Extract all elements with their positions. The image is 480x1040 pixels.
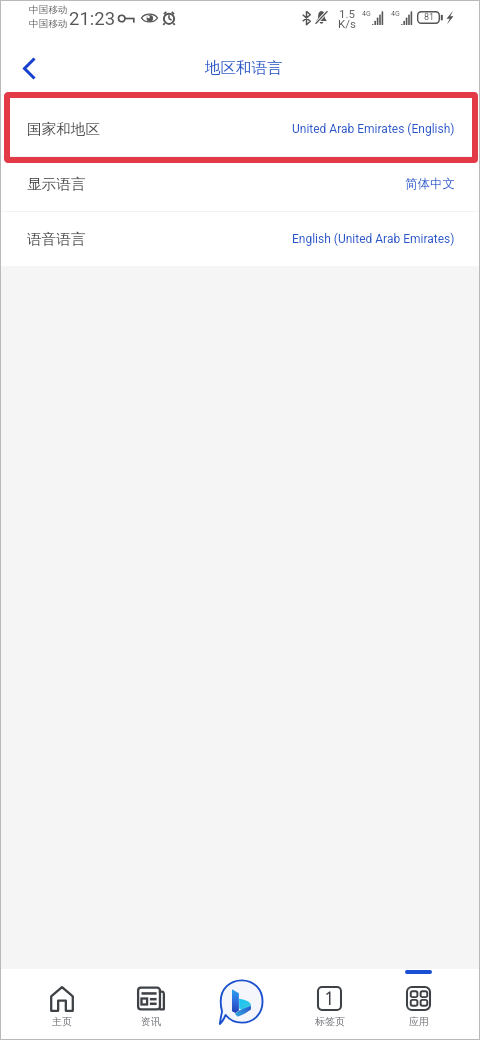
staticText: 1.5 K/s xyxy=(338,7,356,31)
button[interactable]: 语音语言 xyxy=(0,211,480,266)
button[interactable]: 国家和地区 xyxy=(0,101,480,156)
staticText: 语音语言 xyxy=(27,230,86,248)
button[interactable]: 标签页 xyxy=(285,969,374,1040)
staticText: 简体中文 xyxy=(405,176,455,192)
button[interactable]: 主页 xyxy=(17,969,106,1040)
staticText: 4G xyxy=(362,10,371,18)
button[interactable]: Assistant xyxy=(196,969,285,1040)
staticText: English (United Arab Emirates) xyxy=(292,232,455,246)
staticText: 地区和语言 xyxy=(205,58,283,78)
staticText: 国家和地区 xyxy=(27,120,100,138)
button[interactable]: 显示语言 xyxy=(0,156,480,211)
staticText: 81 xyxy=(424,12,435,23)
staticText: United Arab Emirates (English) xyxy=(292,122,455,136)
staticText: 应用 xyxy=(409,1015,429,1028)
button[interactable]: 资讯 xyxy=(106,969,195,1040)
staticText: 标签页 xyxy=(315,1015,345,1028)
staticText: 21:23 xyxy=(69,8,116,30)
button[interactable]: 应用 xyxy=(374,969,463,1040)
staticText: 主页 xyxy=(52,1015,72,1028)
button[interactable]: Back xyxy=(9,48,49,88)
staticText: 显示语言 xyxy=(27,175,86,193)
staticText: 中国移动 中国移动 xyxy=(29,4,68,30)
staticText: 4G xyxy=(391,10,400,18)
staticText: 资讯 xyxy=(141,1015,161,1028)
